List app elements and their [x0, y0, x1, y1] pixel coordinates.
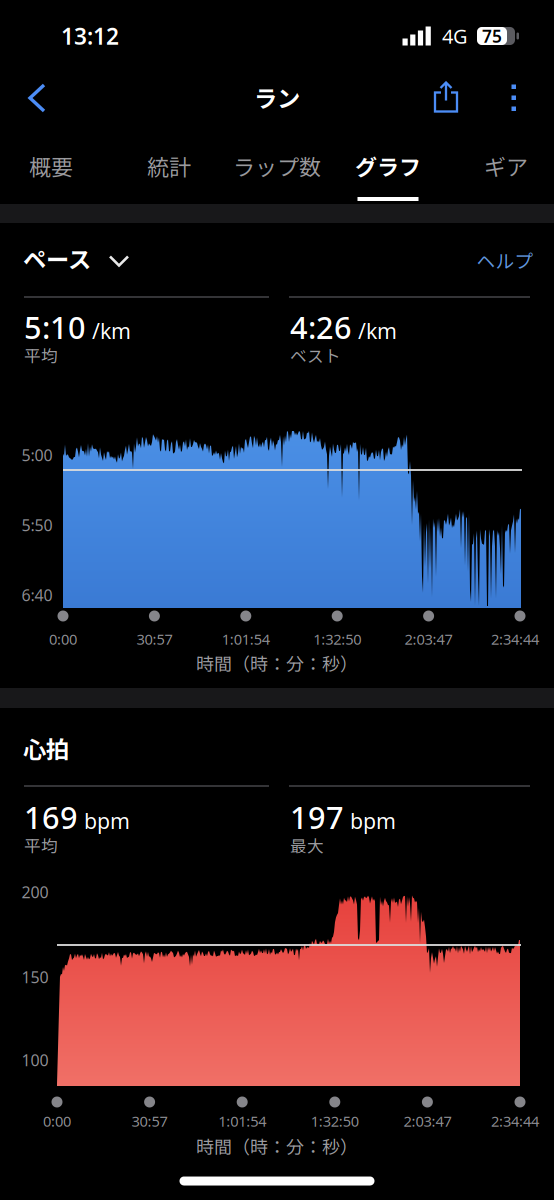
staticText: 6:40 — [21, 584, 52, 606]
staticText: 100 — [21, 1049, 48, 1071]
staticText: /km — [92, 316, 131, 345]
staticText: 200 — [21, 881, 48, 903]
staticText: 169 — [24, 797, 78, 837]
staticText: 75 — [482, 24, 502, 47]
staticText: 最大 — [290, 833, 324, 857]
button[interactable]: ギア — [484, 150, 528, 182]
staticText: 2:03:47 — [403, 1111, 451, 1131]
staticText: ヘルプ — [476, 246, 533, 273]
staticText: 2:03:47 — [405, 629, 453, 649]
staticText: 4:26 — [290, 307, 352, 347]
staticText: 13:12 — [61, 21, 119, 51]
staticText: /km — [358, 316, 397, 345]
button[interactable]: Choose metric — [109, 255, 129, 266]
staticText: bpm — [350, 806, 396, 835]
staticText: 30:57 — [132, 1111, 168, 1131]
staticText: 平均 — [24, 833, 58, 857]
staticText: 1:32:50 — [311, 1111, 359, 1131]
staticText: 30:57 — [136, 629, 172, 649]
button[interactable]: 概要 — [29, 150, 73, 182]
staticText: 平均 — [24, 343, 58, 367]
staticText: ラップ数 — [233, 150, 321, 182]
staticText: 1:32:50 — [313, 629, 361, 649]
staticText: 0:00 — [43, 1111, 71, 1131]
staticText: 5:10 — [24, 307, 86, 347]
button[interactable]: ヘルプ — [476, 246, 533, 273]
staticText: 5:00 — [21, 444, 52, 466]
staticText: bpm — [84, 806, 130, 835]
staticText: 5:50 — [21, 514, 52, 536]
button[interactable]: More — [511, 84, 516, 111]
staticText: ラン — [254, 80, 300, 114]
staticText: 統計 — [147, 150, 191, 182]
staticText: 4G — [442, 23, 468, 49]
staticText: グラフ — [355, 150, 421, 182]
staticText: 1:01:54 — [222, 629, 270, 649]
staticText: ベスト — [290, 343, 341, 367]
staticText: 時間（時：分：秒） — [196, 650, 358, 676]
staticText: 概要 — [29, 150, 73, 182]
staticText: 時間（時：分：秒） — [196, 1133, 358, 1159]
button[interactable]: ラップ数 — [233, 150, 321, 182]
button[interactable]: 統計 — [147, 150, 191, 182]
staticText: 1:01:54 — [218, 1111, 266, 1131]
staticText: 150 — [21, 966, 48, 988]
staticText: 0:00 — [49, 629, 77, 649]
staticText: 心拍 — [23, 731, 69, 765]
staticText: ペース — [23, 241, 91, 275]
staticText: 2:34:44 — [491, 1111, 539, 1131]
button[interactable]: Share — [434, 81, 458, 112]
button[interactable]: Back — [28, 83, 46, 113]
button[interactable]: グラフ — [355, 150, 421, 182]
staticText: 197 — [290, 797, 344, 837]
staticText: ギア — [484, 150, 528, 182]
staticText: 2:34:44 — [491, 629, 539, 649]
